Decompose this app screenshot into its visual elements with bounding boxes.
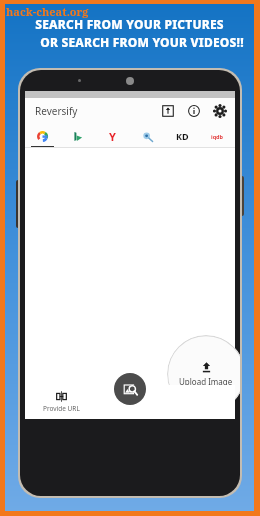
staticText: KD <box>176 130 189 142</box>
button[interactable]: Google search <box>25 124 60 148</box>
staticText: Y <box>109 129 116 144</box>
button[interactable]: IQDB search <box>200 124 235 148</box>
button[interactable]: Karma Decay search <box>165 124 200 148</box>
staticText: Provide URL <box>43 404 80 413</box>
button[interactable]: Search by image <box>114 373 146 405</box>
button[interactable]: Yandex search <box>95 124 130 148</box>
button[interactable]: Open in browser <box>159 102 177 120</box>
button[interactable]: Settings <box>211 102 229 120</box>
staticText: OR SEARCH FROM YOUR VIDEOS!! <box>40 34 244 50</box>
button[interactable]: TinEye search <box>130 124 165 148</box>
button[interactable]: Bing search <box>60 124 95 148</box>
staticText: Reversify <box>35 104 78 118</box>
staticText: hack-cheat.org <box>6 4 89 19</box>
button[interactable]: Information <box>185 102 203 120</box>
staticText: iqdb <box>211 133 224 140</box>
button[interactable]: Provide URL <box>43 391 80 413</box>
button[interactable]: Upload Image <box>167 335 240 413</box>
staticText: Upload Image <box>179 376 233 387</box>
staticText: SEARCH FROM YOUR PICTURES <box>35 16 224 32</box>
